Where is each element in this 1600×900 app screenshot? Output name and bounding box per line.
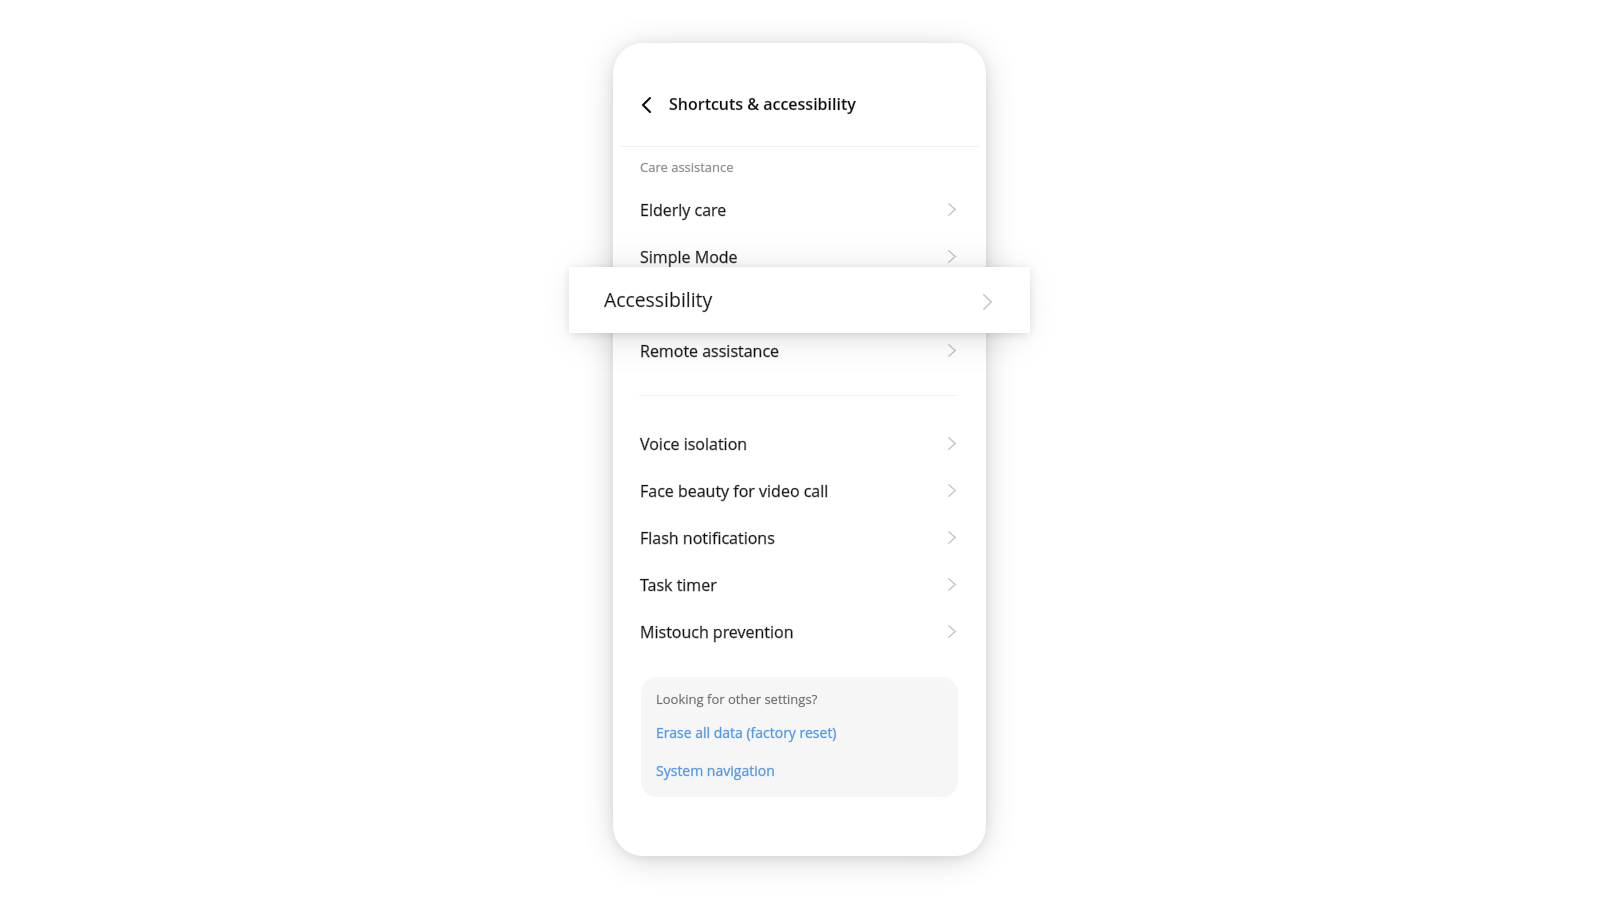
staticText: Care assistance bbox=[640, 158, 734, 176]
button[interactable]: Accessibility bbox=[613, 280, 986, 327]
staticText: Accessibility bbox=[640, 293, 730, 315]
button[interactable]: Remote assistance bbox=[613, 327, 986, 374]
staticText: Care assistance bbox=[640, 158, 734, 176]
staticText: Remote assistance bbox=[640, 340, 779, 362]
staticText: Elderly care bbox=[640, 199, 727, 221]
staticText: Simple Mode bbox=[640, 246, 738, 268]
staticText: Accessibility bbox=[604, 286, 713, 312]
staticText: Accessibility bbox=[640, 293, 730, 315]
other: Open Accessibility bbox=[983, 294, 992, 310]
staticText: Shortcuts & accessibility bbox=[669, 93, 856, 115]
staticText: System navigation bbox=[656, 761, 775, 780]
button[interactable]: Erase all data (factory reset) bbox=[646, 717, 896, 745]
staticText: Mistouch prevention bbox=[640, 621, 794, 643]
button[interactable]: Elderly care bbox=[613, 186, 986, 233]
button[interactable]: System navigation bbox=[646, 755, 896, 783]
staticText: Task timer bbox=[640, 574, 717, 596]
staticText: Accessibility bbox=[604, 286, 713, 312]
button[interactable]: Voice isolation bbox=[613, 420, 986, 467]
staticText: Elderly care bbox=[640, 199, 727, 221]
staticText: Erase all data (factory reset) bbox=[656, 723, 837, 742]
staticText: Remote assistance bbox=[640, 340, 779, 362]
staticText: Flash notifications bbox=[640, 527, 775, 549]
staticText: Face beauty for video call bbox=[640, 480, 829, 502]
staticText: Looking for other settings? bbox=[656, 690, 818, 708]
staticText: Voice isolation bbox=[640, 433, 748, 455]
button[interactable]: Mistouch prevention bbox=[613, 608, 986, 655]
button[interactable]: Flash notifications bbox=[613, 514, 986, 561]
staticText: Mistouch prevention bbox=[640, 621, 794, 643]
staticText: Flash notifications bbox=[640, 527, 775, 549]
staticText: Erase all data (factory reset) bbox=[656, 723, 837, 742]
button[interactable]: Back bbox=[630, 89, 662, 121]
button[interactable]: Face beauty for video call bbox=[613, 467, 986, 514]
staticText: Looking for other settings? bbox=[656, 690, 818, 708]
staticText: System navigation bbox=[656, 761, 775, 780]
button[interactable]: Simple Mode bbox=[613, 233, 986, 280]
staticText: Face beauty for video call bbox=[640, 480, 829, 502]
button[interactable]: Accessibility bbox=[569, 267, 1030, 333]
staticText: Simple Mode bbox=[640, 246, 738, 268]
staticText: Shortcuts & accessibility bbox=[669, 93, 856, 115]
staticText: Voice isolation bbox=[640, 433, 748, 455]
staticText: Task timer bbox=[640, 574, 717, 596]
button[interactable]: Task timer bbox=[613, 561, 986, 608]
